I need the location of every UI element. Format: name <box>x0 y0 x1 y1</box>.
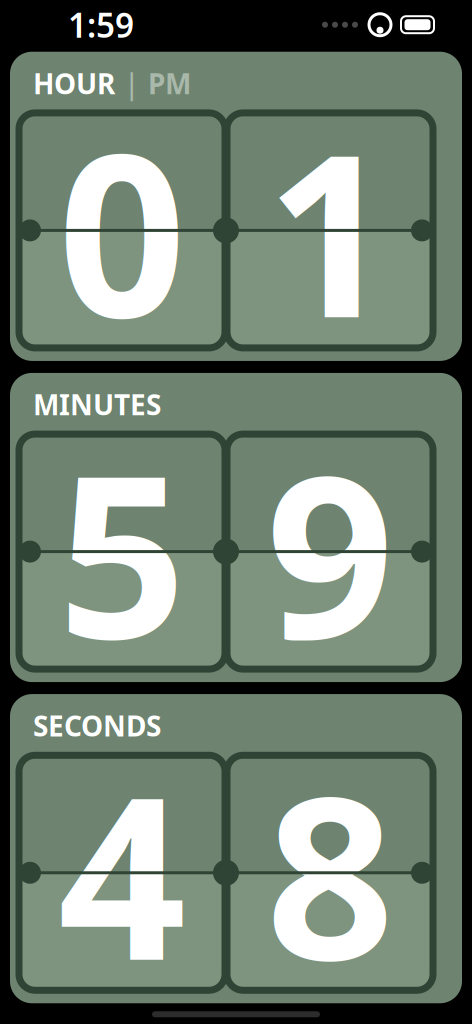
button[interactable]: MINUTES <box>10 373 462 682</box>
staticText: 4 <box>58 724 186 1021</box>
staticText: 5 <box>58 403 186 700</box>
staticText: MINUTES <box>33 386 161 423</box>
staticText: 1 <box>266 82 394 379</box>
staticText: 1:59 <box>68 3 134 47</box>
staticText: 8 <box>266 724 394 1021</box>
button[interactable]: SECONDS <box>10 694 462 1003</box>
staticText: SECONDS <box>33 707 161 744</box>
staticText: PM <box>148 65 191 102</box>
button[interactable]: HOUR <box>10 52 462 361</box>
staticText: | <box>124 65 139 102</box>
staticText: 9 <box>266 403 394 700</box>
staticText: HOUR <box>33 65 115 102</box>
staticText: 0 <box>58 82 186 379</box>
